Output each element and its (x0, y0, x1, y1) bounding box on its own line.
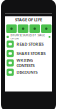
button[interactable]: Browse (6, 24, 17, 33)
button[interactable]: Browse (18, 24, 28, 33)
staticText: SHARE STORIES (16, 51, 45, 56)
button[interactable]: DISCOUNTS (5, 68, 52, 77)
staticText: DISCOUNTS (16, 70, 37, 75)
staticText: READ STORIES (16, 41, 43, 47)
button[interactable]: READ STORIES (5, 39, 52, 49)
staticText: BROWSE STORIES BY STAGE OF LIFE (10, 33, 44, 40)
button[interactable]: SHARE STORIES (5, 49, 52, 58)
staticText: WRITING CONTESTS (16, 58, 34, 68)
button[interactable]: Browse (41, 24, 52, 33)
button[interactable]: WRITING CONTESTS (5, 58, 52, 68)
button[interactable]: Browse (29, 24, 40, 33)
staticText: STAGE OF LIFE (15, 17, 42, 22)
